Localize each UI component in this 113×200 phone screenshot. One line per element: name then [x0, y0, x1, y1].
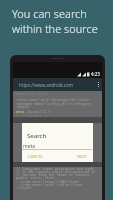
staticText: 4:23: [91, 71, 100, 77]
staticText: You can search: [12, 6, 87, 21]
button[interactable]: NEXT: [77, 154, 88, 159]
button[interactable]: CANCEL: [28, 154, 44, 159]
staticText: within the source: [12, 21, 98, 36]
staticText: </style>: [16, 185, 33, 190]
staticText: Grand Theft Auto V: [16, 92, 49, 96]
staticText: meta: [16, 109, 25, 114]
staticText: meta: [23, 143, 36, 150]
staticText: // runtime from the theme of Context.: [16, 172, 92, 177]
staticText: <!-- Constants -->: [16, 114, 49, 118]
button[interactable]: More options: [95, 82, 101, 88]
button[interactable]: Search: [22, 123, 93, 162]
staticText: <item name="cm_b">@integer/ds</item>: [16, 97, 90, 102]
staticText: // in XML layouts which are resolved at: [16, 169, 96, 174]
staticText: <item name="count">value</item>: [16, 182, 84, 187]
staticText: <integer name="config_ab">1</integer>: [16, 101, 92, 106]
staticText: https://www.android.com: [19, 82, 73, 88]
staticText: NEXT: [77, 154, 88, 159]
staticText: -layout="1"/>: [25, 109, 52, 114]
staticText: <dimen>: [16, 104, 31, 109]
staticText: public static final;: [16, 175, 57, 180]
staticText: CANCEL: [28, 154, 44, 159]
staticText: // Sometimes theme attributes are used: [16, 166, 94, 171]
staticText: <item name="range">100</item>: [16, 179, 80, 184]
staticText: Search: [27, 132, 47, 140]
